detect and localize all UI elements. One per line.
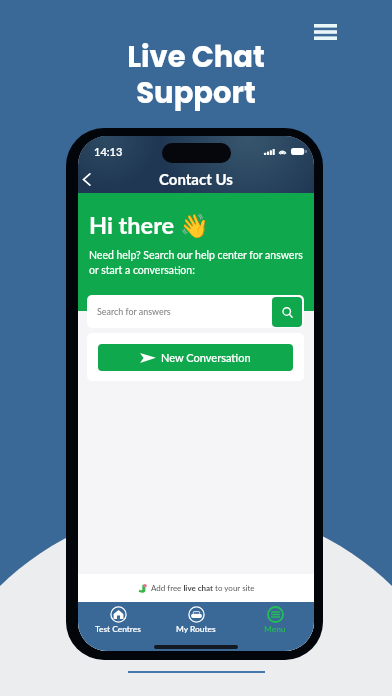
staticText: Contact Us xyxy=(159,170,233,188)
staticText: Live Chat Support xyxy=(127,37,265,114)
button[interactable]: Menu xyxy=(236,606,314,634)
staticText: Test Centres xyxy=(95,624,141,634)
staticText: Hi there 👋 xyxy=(89,211,210,240)
staticText: 14:13 xyxy=(94,145,123,158)
button[interactable]: Search xyxy=(272,297,302,327)
staticText: Need help? Search our help center for an… xyxy=(89,249,304,277)
staticText: Search for answers xyxy=(97,306,171,317)
button[interactable]: My Routes xyxy=(157,606,235,634)
button[interactable]: Back xyxy=(78,165,94,193)
staticText: Add free live chat to your site xyxy=(151,583,255,593)
staticText: New Conversation xyxy=(161,351,251,364)
staticText: My Routes xyxy=(176,624,216,634)
button[interactable]: Test Centres xyxy=(79,606,157,634)
staticText: Menu xyxy=(264,624,286,634)
button[interactable]: New Conversation xyxy=(98,344,293,371)
button[interactable]: Menu xyxy=(311,18,339,46)
